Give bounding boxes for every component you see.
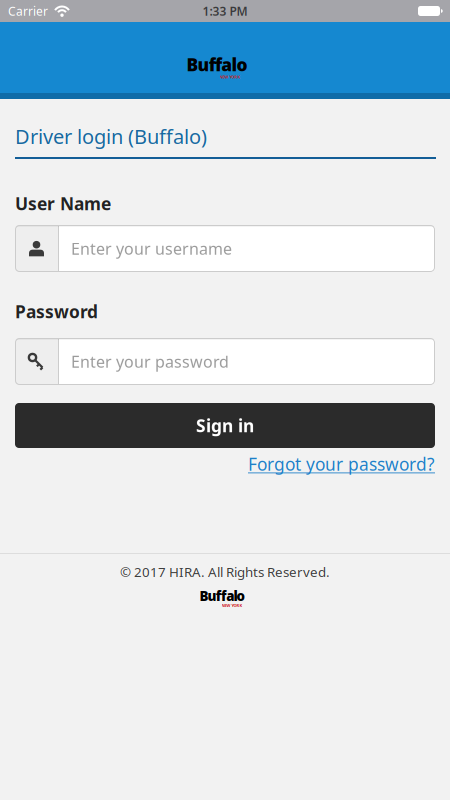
button[interactable]: Password bbox=[15, 338, 435, 385]
staticText: Forgot your password? bbox=[248, 452, 435, 475]
staticText: Enter your username bbox=[71, 238, 232, 259]
button[interactable]: Forgot your password? bbox=[248, 452, 435, 475]
staticText: Sign in bbox=[196, 414, 254, 437]
staticText: 1:33 PM bbox=[202, 3, 247, 19]
staticText: Driver login (Buffalo) bbox=[15, 123, 207, 150]
staticText: Password bbox=[15, 300, 98, 323]
button[interactable]: Sign in bbox=[15, 403, 435, 448]
staticText: Buffalo bbox=[199, 587, 245, 605]
staticText: Buffalo bbox=[186, 53, 248, 76]
staticText: Enter your password bbox=[71, 351, 229, 372]
staticText: Carrier bbox=[8, 3, 48, 19]
staticText: NEW YORK bbox=[219, 74, 240, 79]
staticText: © 2017 HIRA. All Rights Reserved. bbox=[120, 563, 330, 581]
staticText: NEW YORK bbox=[221, 603, 242, 608]
staticText: User Name bbox=[15, 192, 111, 215]
button[interactable]: User Name bbox=[15, 225, 435, 272]
